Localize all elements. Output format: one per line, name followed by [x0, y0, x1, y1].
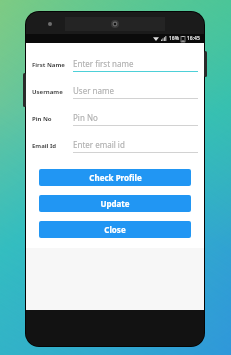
staticText: User name [73, 85, 114, 96]
staticText: 16% [169, 35, 179, 42]
button[interactable]: Pin No [26, 105, 204, 132]
staticText: 16:45 [187, 35, 200, 42]
staticText: Update [100, 198, 130, 209]
staticText: Email Id [32, 142, 70, 150]
staticText: Check Profile [89, 172, 142, 183]
staticText: Pin No [32, 115, 70, 123]
staticText: Enter email id [73, 139, 125, 150]
staticText: First Name [32, 61, 70, 69]
button[interactable]: Close [39, 221, 191, 238]
button[interactable]: Username [26, 78, 204, 105]
button[interactable]: First Name [26, 51, 204, 78]
button[interactable]: Update [39, 195, 191, 212]
staticText: Pin No [73, 112, 98, 123]
button[interactable]: Check Profile [39, 169, 191, 186]
button[interactable]: Email Id [26, 132, 204, 159]
staticText: Username [32, 88, 70, 96]
staticText: Close [104, 224, 126, 235]
staticText: Enter first name [73, 58, 134, 69]
